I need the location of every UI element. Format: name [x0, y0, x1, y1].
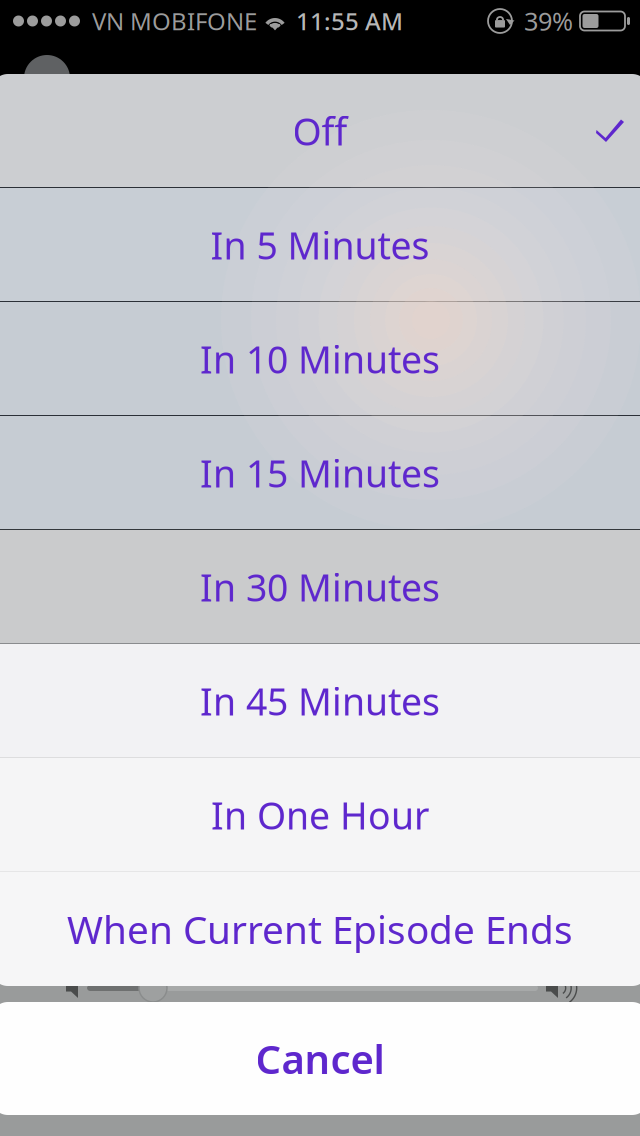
staticText: -14:02 — [602, 737, 640, 781]
staticText: When Current Episode Ends — [67, 903, 573, 955]
button[interactable]: In 45 Minutes — [0, 644, 640, 758]
staticText: In 5 Minutes — [210, 220, 429, 270]
button[interactable]: In 10 Minutes — [0, 302, 640, 416]
button[interactable]: Off — [0, 74, 640, 188]
staticText: 39% — [524, 4, 573, 38]
staticText: 11:55 AM — [296, 5, 403, 37]
staticText: Off — [292, 106, 347, 156]
button[interactable]: When Current Episode Ends — [0, 872, 640, 986]
staticText: VN MOBIFONE — [92, 5, 257, 37]
button[interactable]: In 15 Minutes — [0, 416, 640, 530]
button[interactable]: Cancel — [0, 1002, 640, 1115]
staticText: In 15 Minutes — [200, 448, 440, 498]
button[interactable]: In One Hour — [0, 758, 640, 872]
staticText: In 45 Minutes — [200, 676, 440, 726]
staticText: In 10 Minutes — [200, 334, 440, 384]
staticText: In One Hour — [211, 790, 429, 840]
staticText: In 30 Minutes — [200, 562, 440, 612]
staticText: Cancel — [255, 1032, 384, 1085]
button[interactable]: In 30 Minutes — [0, 530, 640, 644]
button[interactable]: In 5 Minutes — [0, 188, 640, 302]
staticText: Show Title Here — [0, 737, 205, 781]
